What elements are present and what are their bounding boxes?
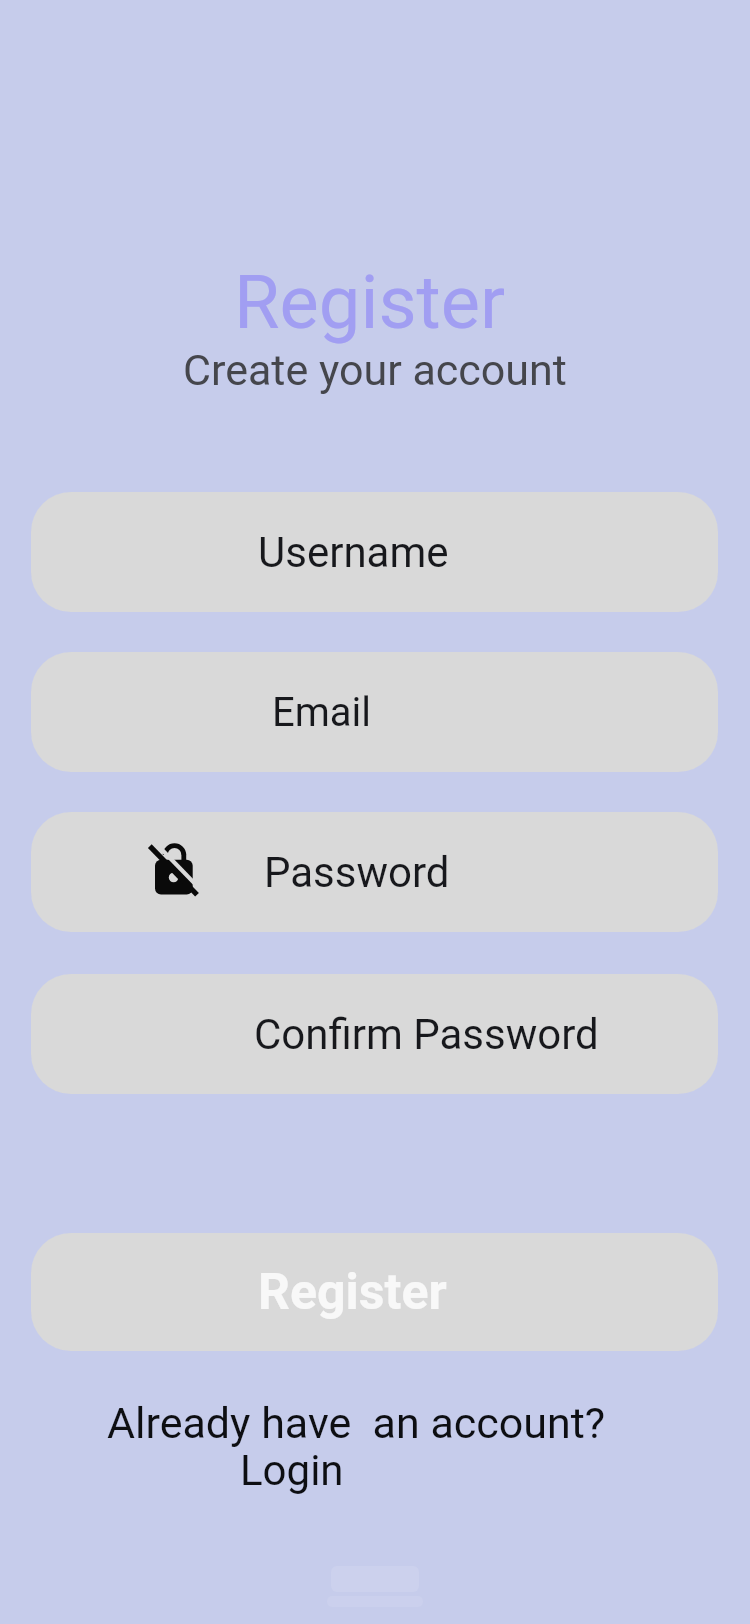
button[interactable]: Confirm Password [31,974,718,1094]
button[interactable]: Password [31,812,718,932]
button[interactable]: Username [31,492,718,612]
staticText: Create your account [183,345,567,395]
staticText: Username [258,528,449,577]
staticText: Register [258,1263,447,1322]
staticText: Login [240,1446,344,1495]
staticText: Already have an account? [107,1398,606,1448]
button[interactable]: Login [240,1446,344,1495]
staticText: Register [234,259,506,346]
staticText: Confirm Password [254,1010,599,1059]
button[interactable]: Register [31,1233,718,1351]
button[interactable]: Email [31,652,718,772]
staticText: Email [272,689,372,736]
staticText: Password [264,848,450,897]
